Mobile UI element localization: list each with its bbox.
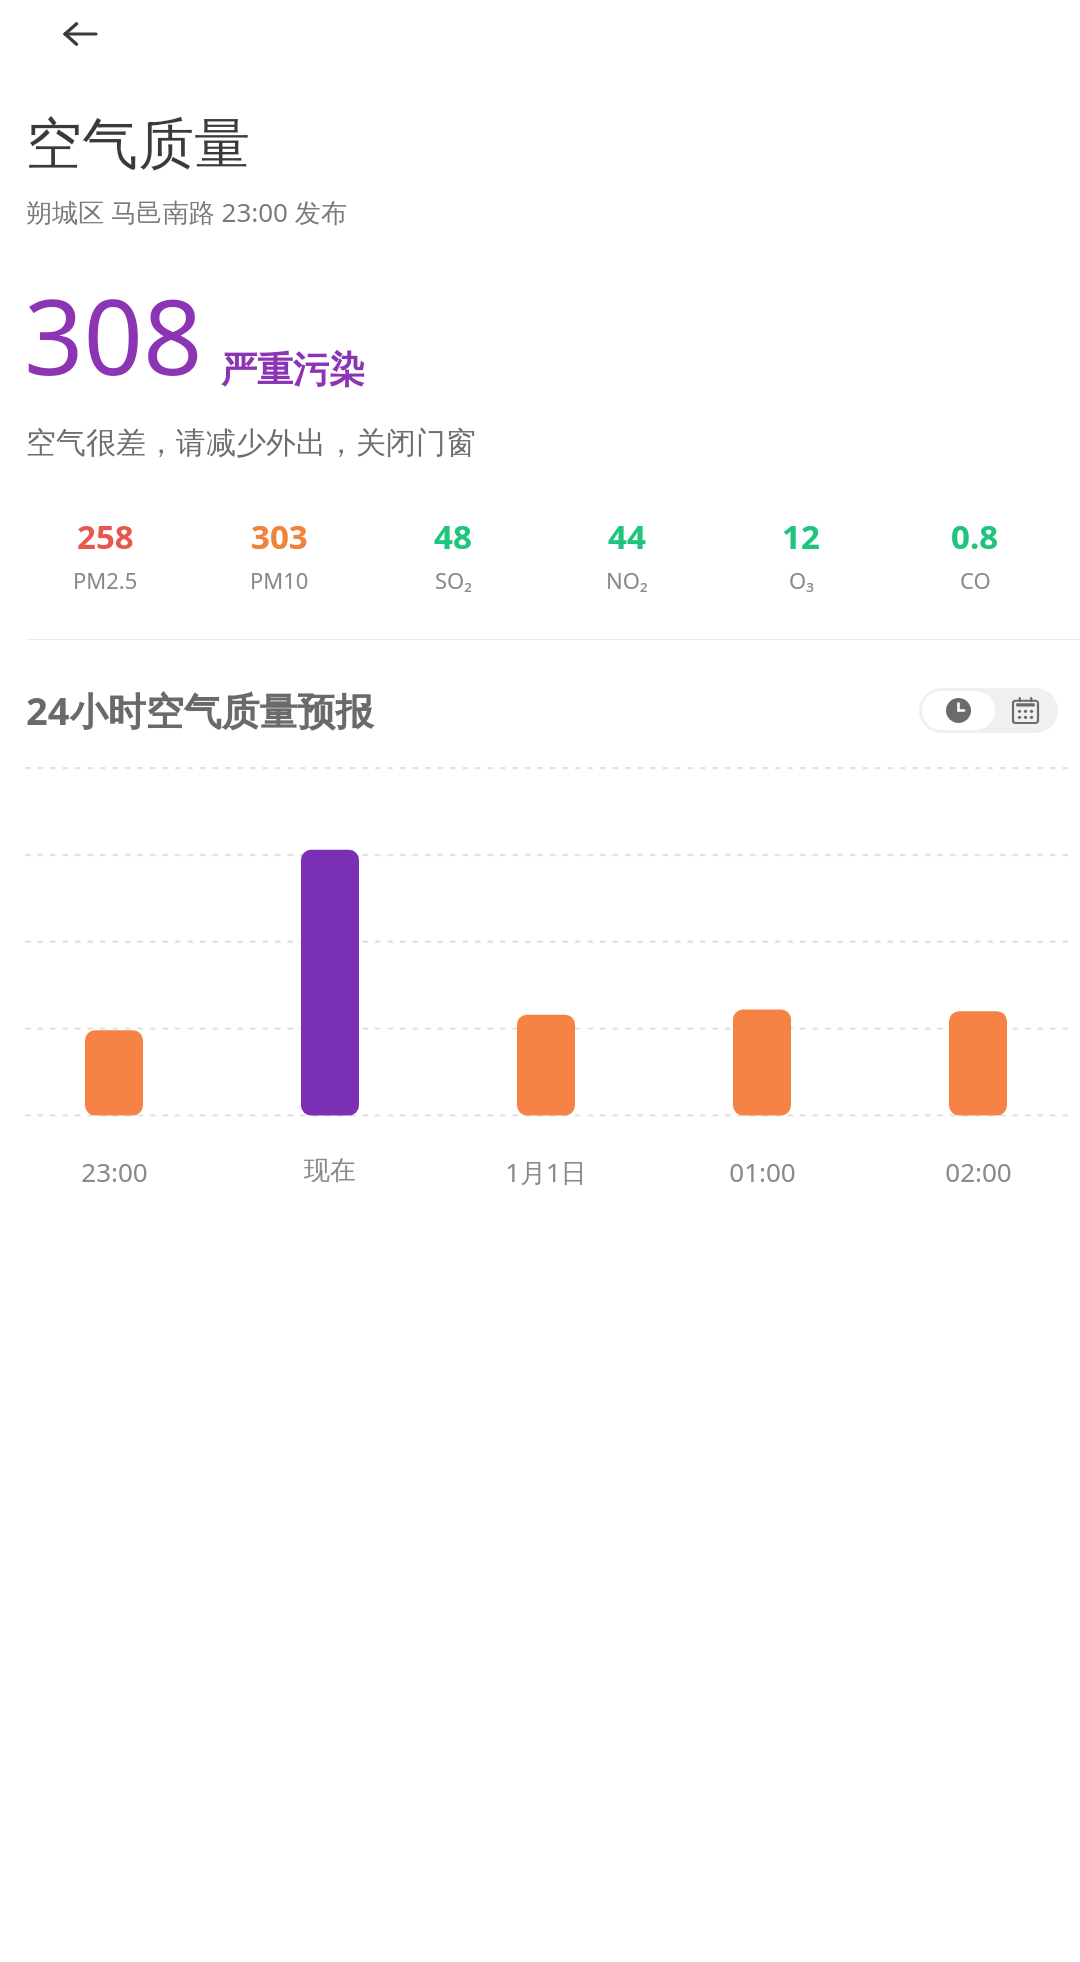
staticText: 02:00 [945,1154,1012,1189]
staticText: 1月1日 [505,1154,587,1190]
staticText: 44 [608,514,646,559]
staticText: 12 [782,514,820,559]
staticText: O₃ [789,565,814,595]
staticText: 308 [24,264,203,406]
staticText: NO₂ [606,565,648,595]
staticText: 24小时空气质量预报 [26,684,374,736]
button[interactable]: Daily forecast [992,688,1058,733]
staticText: 258 [77,514,134,559]
staticText: SO₂ [435,565,472,595]
staticText: 01:00 [729,1154,796,1189]
staticText: 空气很差，请减少外出，关闭门窗 [26,424,476,462]
staticText: PM10 [250,565,309,595]
staticText: 303 [251,514,308,559]
staticText: 朔城区 马邑南路 23:00 发布 [26,194,347,230]
staticText: 空气质量 [26,109,250,180]
button[interactable]: Back [52,6,108,62]
staticText: 23:00 [81,1154,148,1189]
staticText: 48 [434,514,472,559]
staticText: 严重污染 [221,347,365,392]
staticText: PM2.5 [73,565,138,595]
button[interactable]: Hourly forecast [922,691,995,730]
staticText: CO [960,565,991,595]
staticText: 现在 [304,1154,356,1187]
staticText: 0.8 [951,514,999,559]
